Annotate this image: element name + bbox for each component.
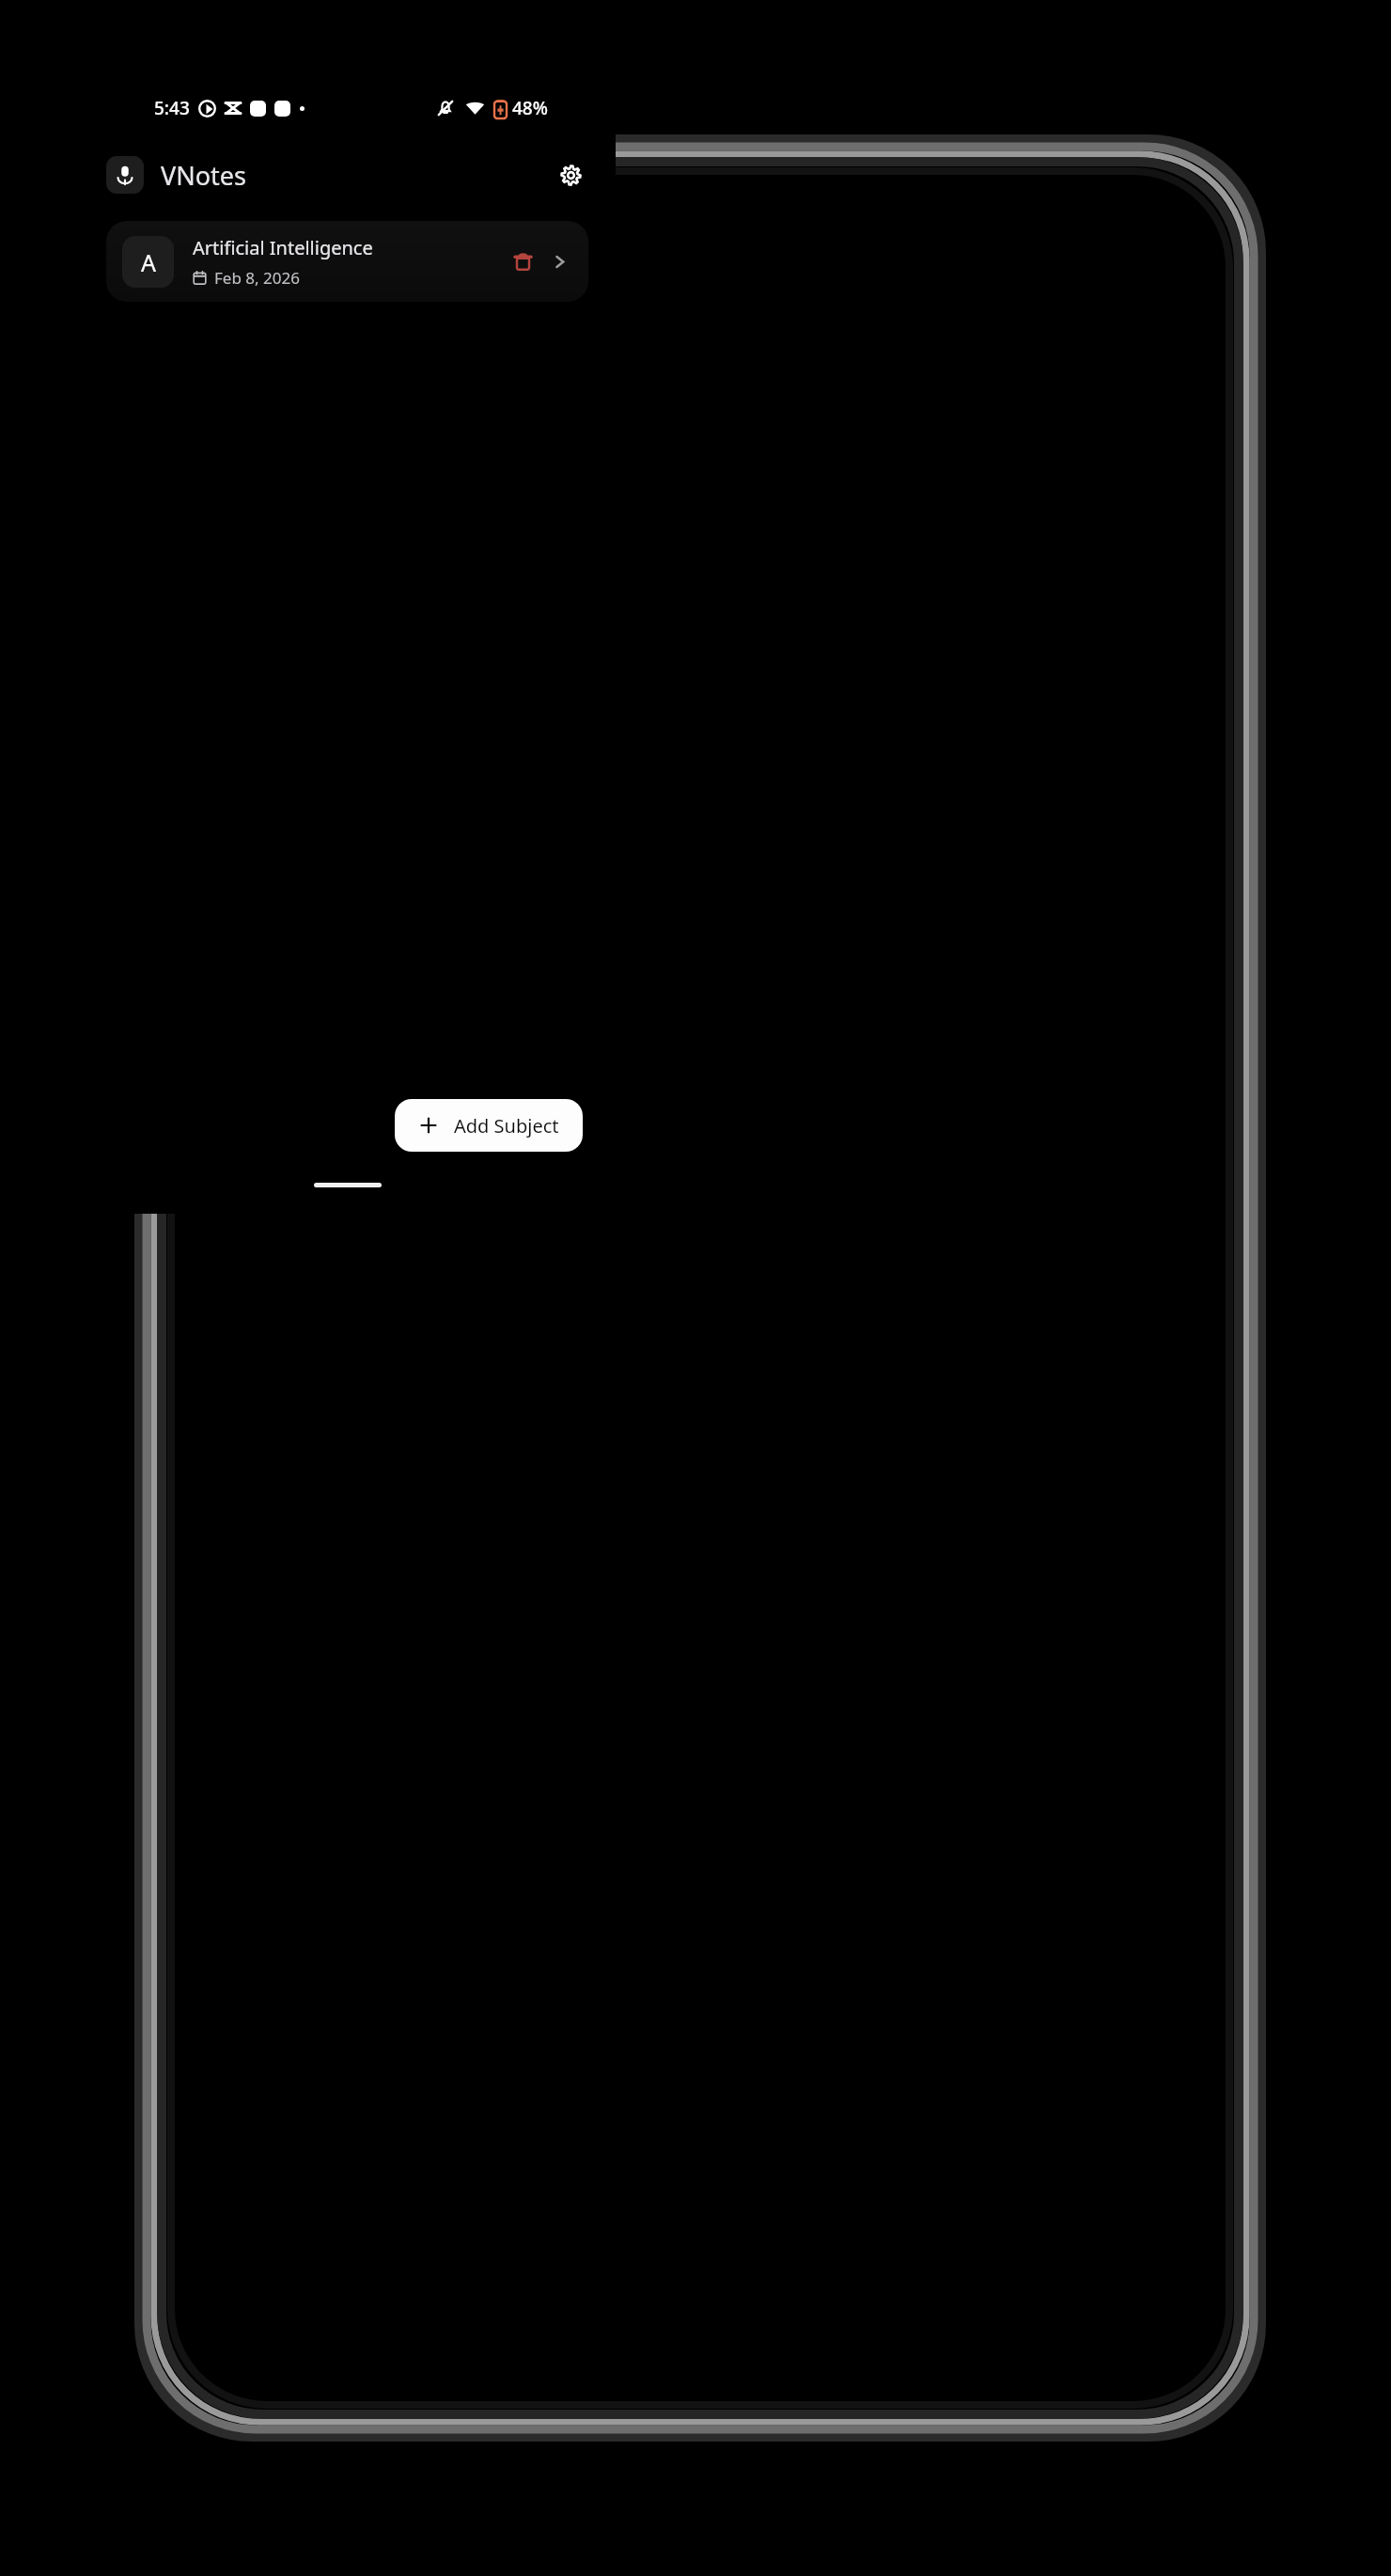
button[interactable]: Voice record (106, 156, 144, 194)
staticText: Feb 8, 2026 (214, 267, 300, 289)
staticText: VNotes (161, 158, 246, 193)
button[interactable]: A (106, 221, 588, 302)
button[interactable]: Open subject (543, 245, 575, 277)
button[interactable]: Add Subject (395, 1099, 583, 1152)
staticText: 5:43 (154, 96, 190, 120)
staticText: Artificial Intelligence (193, 235, 373, 260)
staticText: Add Subject (454, 1113, 559, 1139)
staticText: 48% (512, 96, 548, 120)
staticText: A (141, 246, 156, 278)
button[interactable]: Delete (504, 243, 541, 280)
button[interactable]: Settings (550, 154, 591, 196)
